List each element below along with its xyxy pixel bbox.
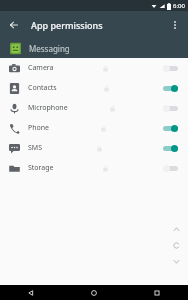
staticText: Storage	[28, 163, 54, 173]
button[interactable]: Off	[161, 101, 180, 115]
staticText: Messaging	[29, 43, 70, 54]
staticText: SMS	[28, 143, 43, 153]
button[interactable]: Home	[62, 285, 125, 300]
button[interactable]: Recent apps	[125, 285, 188, 300]
button[interactable]: More options	[161, 11, 188, 38]
button[interactable]: Scroll down	[171, 256, 182, 267]
staticText: 6:00	[173, 2, 185, 10]
staticText: Microphone	[28, 103, 68, 113]
button[interactable]: On	[161, 141, 180, 155]
button[interactable]: Off	[161, 61, 180, 75]
button[interactable]: On	[161, 121, 180, 135]
button[interactable]: Contacts	[0, 78, 188, 98]
button[interactable]: Off	[161, 161, 180, 175]
button[interactable]: Back	[0, 285, 62, 300]
button[interactable]: Microphone	[0, 98, 188, 118]
button[interactable]: SMS	[0, 138, 188, 158]
button[interactable]: Back	[0, 11, 27, 38]
button[interactable]: Rotate	[171, 240, 182, 251]
button[interactable]: Phone	[0, 118, 188, 138]
staticText: Contacts	[28, 83, 57, 93]
staticText: Phone	[28, 123, 50, 133]
staticText: Camera	[28, 63, 54, 73]
button[interactable]: Storage	[0, 158, 188, 178]
button[interactable]: On	[161, 81, 180, 95]
staticText: App permissions	[31, 19, 103, 31]
button[interactable]: Scroll up	[171, 224, 182, 235]
button[interactable]: Camera	[0, 58, 188, 78]
